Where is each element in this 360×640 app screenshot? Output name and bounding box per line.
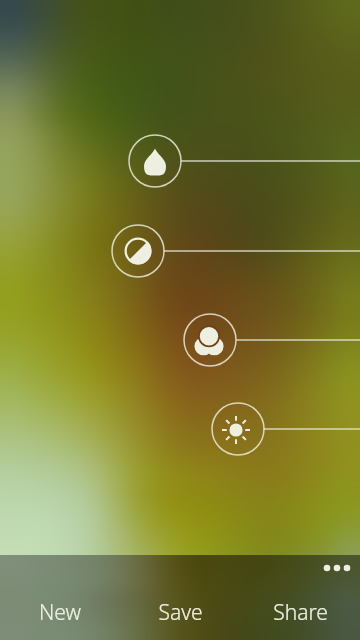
staticText: Save [158, 598, 203, 627]
staticText: Share [273, 598, 328, 627]
button[interactable]: New [0, 584, 120, 640]
staticText: New [39, 598, 81, 627]
button[interactable]: Share [240, 584, 360, 640]
button[interactable]: More options [308, 557, 352, 579]
button[interactable]: Save [120, 584, 240, 640]
